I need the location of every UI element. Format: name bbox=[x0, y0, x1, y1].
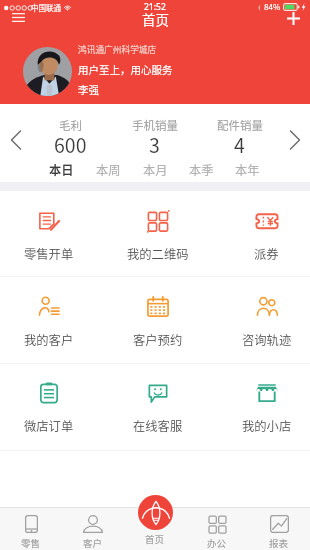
staticText: 本月 bbox=[143, 161, 168, 179]
staticText: 600 bbox=[54, 130, 87, 158]
button[interactable]: 客户预约 bbox=[103, 277, 212, 363]
staticText: 本年 bbox=[235, 161, 260, 179]
button[interactable]: 零售 bbox=[0, 507, 62, 550]
button[interactable]: Next bbox=[279, 126, 310, 154]
button[interactable]: Add bbox=[278, 5, 308, 31]
button[interactable]: Previous bbox=[0, 126, 31, 154]
button[interactable]: 本日 bbox=[38, 158, 85, 182]
button[interactable]: 本年 bbox=[224, 158, 270, 182]
button[interactable]: 客户 bbox=[62, 507, 124, 550]
staticText: 我的二维码 bbox=[127, 245, 189, 263]
staticText: 报表 bbox=[269, 536, 289, 550]
staticText: 客户预约 bbox=[133, 331, 183, 349]
button[interactable]: 微店订单 bbox=[0, 363, 103, 449]
button[interactable]: 报表 bbox=[248, 507, 310, 550]
button[interactable]: 本月 bbox=[132, 158, 178, 182]
button[interactable]: 本周 bbox=[85, 158, 132, 182]
staticText: 派券 bbox=[254, 245, 279, 263]
button[interactable]: 零售开单 bbox=[0, 191, 103, 277]
staticText: 我的客户 bbox=[24, 331, 74, 349]
button[interactable]: 在线客服 bbox=[103, 363, 212, 449]
button[interactable]: 本季 bbox=[178, 158, 224, 182]
staticText: 21:52 bbox=[144, 1, 166, 13]
staticText: 本周 bbox=[96, 161, 121, 179]
staticText: 本季 bbox=[189, 161, 214, 179]
staticText: 首页 bbox=[142, 9, 169, 29]
staticText: 办公 bbox=[207, 536, 227, 550]
staticText: 3 bbox=[149, 130, 160, 158]
staticText: 首页 bbox=[145, 532, 165, 546]
button[interactable]: 我的客户 bbox=[0, 277, 103, 363]
staticText: 微店订单 bbox=[24, 417, 74, 435]
button[interactable]: 首页 bbox=[124, 495, 186, 550]
button[interactable]: 咨询轨迹 bbox=[212, 277, 310, 363]
staticText: 配件销量 bbox=[217, 117, 263, 134]
staticText: 4 bbox=[234, 130, 245, 158]
staticText: 鸿讯通广州科学城店 bbox=[78, 43, 157, 56]
button[interactable]: 办公 bbox=[186, 507, 248, 550]
button[interactable]: 我的二维码 bbox=[103, 191, 212, 277]
staticText: 我的小店 bbox=[242, 417, 292, 435]
staticText: 毛利 bbox=[59, 117, 82, 134]
staticText: 中国联通 bbox=[31, 2, 61, 13]
staticText: 零售 bbox=[21, 536, 41, 550]
staticText: 李强 bbox=[78, 82, 99, 97]
staticText: 客户 bbox=[83, 536, 103, 550]
button[interactable]: Menu bbox=[3, 4, 33, 30]
staticText: 在线客服 bbox=[133, 417, 183, 435]
button[interactable]: 派券 bbox=[212, 191, 310, 277]
staticText: 84% bbox=[264, 1, 281, 13]
staticText: 手机销量 bbox=[132, 117, 178, 134]
button[interactable]: 我的小店 bbox=[212, 363, 310, 449]
staticText: 用户至上，用心服务 bbox=[78, 62, 173, 77]
staticText: 本日 bbox=[49, 161, 74, 179]
staticText: 零售开单 bbox=[24, 245, 74, 263]
staticText: 咨询轨迹 bbox=[242, 331, 292, 349]
